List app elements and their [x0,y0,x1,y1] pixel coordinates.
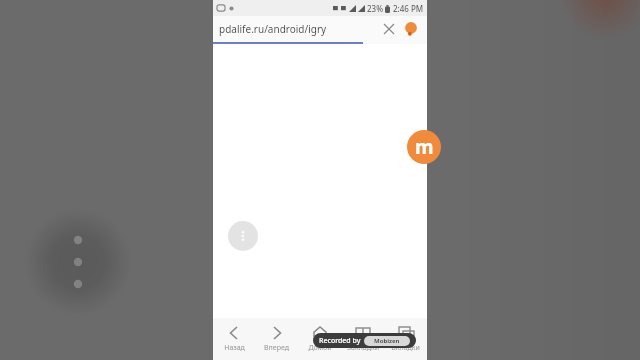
staticText: 23% [367,3,383,14]
staticText: m [415,134,434,160]
staticText: Вкладки [391,343,420,353]
staticText: Mobizen [374,337,400,345]
staticText: Домой [308,343,332,353]
staticText: Recorded by [319,336,361,346]
button[interactable]: Вкладки [384,318,427,360]
button[interactable]: Назад [213,318,255,360]
staticText: pdalife.ru/android/igry [219,22,327,36]
staticText: Вперед [264,343,289,353]
button[interactable]: pdalife.ru/android/igry [219,16,379,42]
button[interactable]: More options [228,221,258,251]
staticText: Назад [224,343,245,353]
button[interactable]: Clear address [379,19,399,39]
button[interactable]: Домой [298,318,341,360]
button[interactable]: Downloads [401,19,421,39]
other: Site logo [407,130,441,164]
staticText: Закладки [347,343,379,353]
staticText: 2:46 PM [393,3,424,14]
button[interactable]: Вперед [255,318,298,360]
button[interactable]: Закладки [341,318,384,360]
